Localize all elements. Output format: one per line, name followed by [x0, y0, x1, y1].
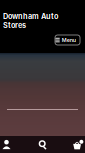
button[interactable]: Basket: [73, 139, 84, 149]
button[interactable]: Account: [2, 139, 11, 149]
button[interactable]: Search: [38, 139, 47, 149]
staticText: Stores: [3, 21, 26, 30]
button[interactable]: Menu: [55, 35, 80, 45]
staticText: Downham Auto: [3, 12, 58, 21]
staticText: Menu: [62, 37, 76, 43]
